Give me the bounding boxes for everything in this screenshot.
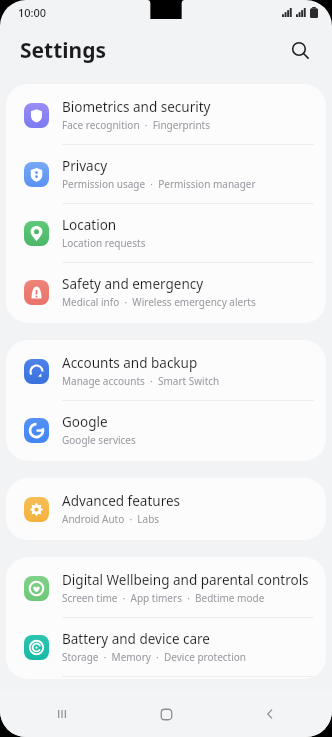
button[interactable]: Advanced features [6,480,326,538]
staticText: Google [62,413,108,431]
staticText: Privacy [62,157,108,175]
staticText: Location [62,216,117,234]
staticText: 10:00 [18,5,47,20]
staticText: Permission usage · Permission manager [62,177,256,191]
staticText: Location requests [62,236,146,250]
staticText: Google services [62,433,136,447]
button[interactable]: Location [6,204,326,262]
staticText: Advanced features [62,492,181,510]
button[interactable]: Search [280,30,320,70]
staticText: Storage · Memory · Device protection [62,650,247,664]
staticText: Face recognition · Fingerprints [62,118,210,132]
button[interactable]: Home [139,691,193,737]
button[interactable]: Recent apps [35,691,89,737]
staticText: Settings [20,36,107,65]
button[interactable]: Google [6,401,326,459]
button[interactable]: Back [243,691,297,737]
staticText: Medical info · Wireless emergency alerts [62,295,256,309]
staticText: Battery and device care [62,630,210,648]
button[interactable]: Privacy [6,145,326,203]
staticText: Safety and emergency [62,275,204,293]
staticText: Digital Wellbeing and parental controls [62,571,309,589]
button[interactable]: Safety and emergency [6,263,326,321]
staticText: Android Auto · Labs [62,512,160,526]
staticText: Biometrics and security [62,98,211,116]
button[interactable]: Accounts and backup [6,342,326,400]
staticText: Accounts and backup [62,354,198,372]
button[interactable]: Digital Wellbeing and parental controls [6,559,326,617]
button[interactable]: Biometrics and security [6,86,326,144]
button[interactable]: Battery and device care [6,618,326,676]
staticText: Screen time · App timers · Bedtime mode [62,591,265,605]
staticText: Manage accounts · Smart Switch [62,374,220,388]
